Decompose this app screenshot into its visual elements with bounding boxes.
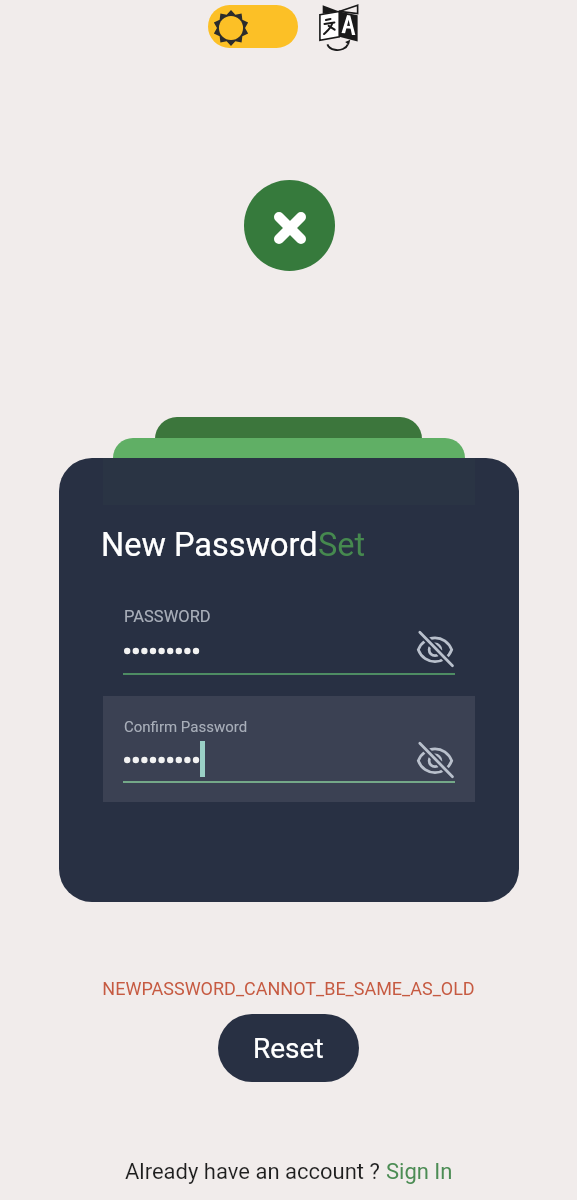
staticText: PASSWORD: [124, 607, 211, 626]
button[interactable]: Close: [244, 180, 335, 271]
staticText: Set: [318, 526, 366, 564]
button[interactable]: Show confirm password: [414, 739, 456, 781]
staticText: Already have an account ?: [125, 1159, 386, 1185]
button[interactable]: Toggle dark mode: [208, 5, 298, 48]
button[interactable]: Change language: [314, 0, 366, 52]
button[interactable]: Sign In: [386, 1159, 453, 1185]
button[interactable]: Show password: [414, 628, 456, 670]
staticText: NEWPASSWORD_CANNOT_BE_SAME_AS_OLD: [0, 978, 577, 999]
button[interactable]: Reset: [218, 1014, 359, 1082]
staticText: Confirm Password: [124, 718, 248, 736]
staticText: Reset: [253, 1032, 324, 1065]
staticText: Sign In: [386, 1159, 453, 1185]
staticText: New Password: [101, 526, 318, 564]
